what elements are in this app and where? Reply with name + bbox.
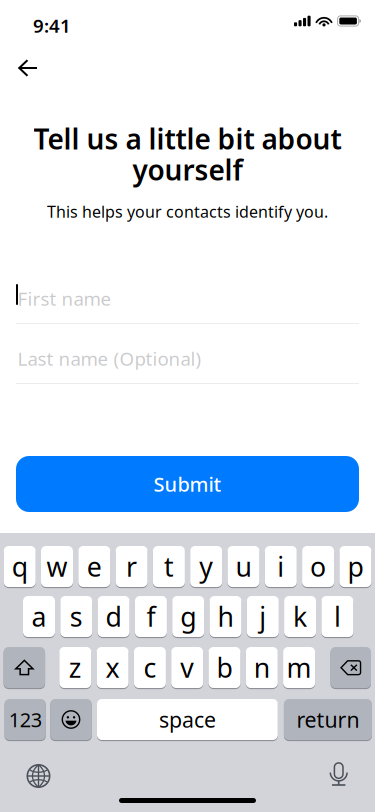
button[interactable]: Back bbox=[2, 47, 54, 89]
button[interactable]: f bbox=[135, 596, 167, 638]
staticText: p bbox=[347, 549, 363, 584]
staticText: n bbox=[254, 650, 270, 685]
staticText: x bbox=[106, 650, 120, 685]
staticText: e bbox=[87, 549, 102, 584]
staticText: c bbox=[143, 650, 156, 685]
button[interactable]: k bbox=[284, 596, 316, 638]
staticText: k bbox=[293, 599, 307, 634]
button[interactable]: return bbox=[284, 699, 372, 741]
staticText: g bbox=[180, 599, 196, 634]
staticText: z bbox=[69, 650, 82, 685]
button[interactable]: Last name (Optional) bbox=[0, 324, 375, 384]
button[interactable]: Dictate bbox=[329, 762, 349, 786]
staticText: b bbox=[216, 650, 232, 685]
button[interactable]: s bbox=[60, 596, 92, 638]
button[interactable]: Shift bbox=[4, 647, 45, 689]
staticText: t bbox=[164, 549, 174, 584]
staticText: h bbox=[217, 599, 233, 634]
button[interactable]: d bbox=[98, 596, 130, 638]
staticText: s bbox=[70, 599, 83, 634]
button[interactable]: Emoji bbox=[50, 699, 92, 741]
staticText: m bbox=[287, 650, 312, 685]
button[interactable]: m bbox=[283, 647, 315, 689]
button[interactable]: n bbox=[246, 647, 278, 689]
button[interactable]: t bbox=[153, 546, 185, 588]
button[interactable]: r bbox=[116, 546, 148, 588]
staticText: l bbox=[334, 599, 341, 634]
button[interactable]: space bbox=[97, 699, 278, 741]
button[interactable]: Submit bbox=[16, 456, 359, 512]
button[interactable]: Numbers and symbols bbox=[4, 699, 46, 741]
staticText: i bbox=[277, 549, 284, 584]
button[interactable]: e bbox=[78, 546, 110, 588]
staticText: a bbox=[31, 599, 46, 634]
staticText: This helps your contacts identify you. bbox=[47, 201, 328, 222]
button[interactable]: o bbox=[302, 546, 334, 588]
staticText: y bbox=[199, 549, 213, 584]
staticText: w bbox=[46, 549, 67, 584]
button[interactable]: h bbox=[209, 596, 241, 638]
staticText: f bbox=[146, 599, 155, 634]
staticText: u bbox=[235, 549, 251, 584]
staticText: First name bbox=[17, 286, 111, 311]
staticText: return bbox=[296, 705, 359, 734]
staticText: space bbox=[159, 705, 216, 734]
staticText: o bbox=[310, 549, 326, 584]
staticText: v bbox=[180, 650, 194, 685]
button[interactable]: v bbox=[171, 647, 203, 689]
button[interactable]: q bbox=[4, 546, 36, 588]
staticText: q bbox=[12, 549, 28, 584]
button[interactable]: a bbox=[23, 596, 55, 638]
button[interactable]: j bbox=[247, 596, 279, 638]
button[interactable]: i bbox=[265, 546, 297, 588]
staticText: j bbox=[259, 599, 266, 634]
staticText: d bbox=[106, 599, 122, 634]
staticText: Submit bbox=[153, 471, 221, 497]
staticText: Tell us a little bit about bbox=[33, 120, 341, 157]
button[interactable]: g bbox=[172, 596, 204, 638]
button[interactable]: b bbox=[208, 647, 240, 689]
button[interactable]: l bbox=[321, 596, 353, 638]
staticText: 123 bbox=[9, 706, 42, 733]
staticText: Last name (Optional) bbox=[17, 346, 201, 371]
button[interactable]: y bbox=[190, 546, 222, 588]
staticText: 9:41 bbox=[33, 13, 71, 38]
button[interactable]: Delete bbox=[330, 647, 371, 689]
button[interactable]: p bbox=[339, 546, 371, 588]
button[interactable]: x bbox=[97, 647, 129, 689]
button[interactable]: z bbox=[59, 647, 91, 689]
button[interactable]: c bbox=[134, 647, 166, 689]
staticText: r bbox=[126, 549, 137, 584]
staticText: yourself bbox=[132, 151, 242, 188]
button[interactable]: w bbox=[41, 546, 73, 588]
button[interactable]: First name bbox=[0, 264, 375, 324]
button[interactable]: Next keyboard bbox=[26, 764, 50, 788]
button[interactable]: u bbox=[227, 546, 259, 588]
